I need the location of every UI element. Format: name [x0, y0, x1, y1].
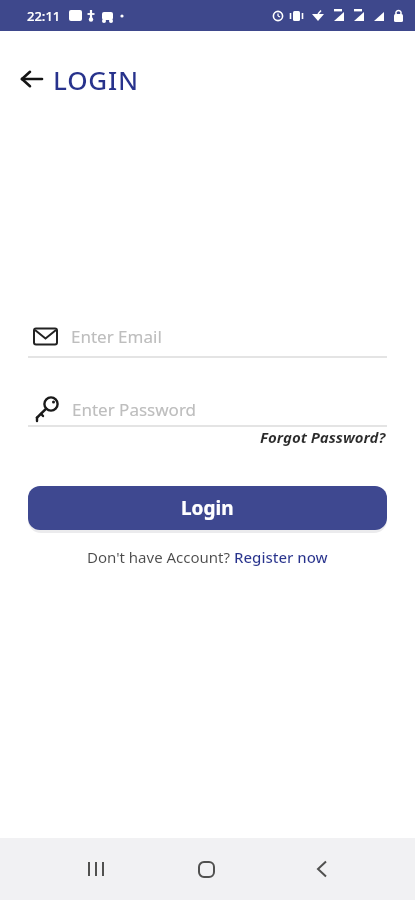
button[interactable] [14, 61, 50, 97]
button[interactable]: Enter Password [28, 395, 387, 427]
button[interactable]: Enter Email [28, 325, 387, 358]
button[interactable]: Login [28, 486, 387, 530]
button[interactable] [182, 845, 230, 893]
button[interactable] [298, 845, 346, 893]
staticText: Login [181, 495, 234, 521]
staticText: Enter Password [72, 398, 197, 421]
staticText: 22:11 [27, 7, 61, 25]
staticText: LOGIN [53, 62, 140, 97]
staticText: Don't have Account? [87, 547, 234, 567]
button[interactable]: Forgot Password? [260, 427, 386, 447]
staticText: Register now [234, 547, 328, 567]
staticText: Enter Email [71, 325, 162, 348]
button[interactable] [72, 845, 120, 893]
button[interactable]: Don't have Account? [0, 547, 415, 567]
